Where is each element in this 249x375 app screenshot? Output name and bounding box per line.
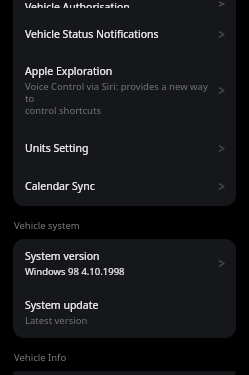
button[interactable]: Units Setting <box>13 129 236 167</box>
staticText: System update <box>25 298 99 312</box>
staticText: System version <box>25 249 100 263</box>
staticText: Windows 98 4.10.1998 <box>25 265 125 278</box>
staticText: Apple Exploration <box>25 64 113 78</box>
staticText: Calendar Sync <box>25 179 95 193</box>
button[interactable]: Vehicle Status Notifications <box>13 15 236 53</box>
staticText: Voice Control via Siri: provides a new w… <box>25 80 213 117</box>
staticText: Vehicle system <box>14 219 80 232</box>
button[interactable]: System update <box>13 289 236 338</box>
staticText: Vehicle Authorisation <box>25 0 130 8</box>
staticText: Latest version <box>25 314 88 327</box>
staticText: Vehicle Info <box>14 351 67 364</box>
button[interactable]: Calendar Sync <box>13 167 236 206</box>
button[interactable]: Apple Exploration <box>13 53 236 129</box>
button[interactable]: System version <box>13 239 236 289</box>
staticText: Vehicle Status Notifications <box>25 27 159 41</box>
staticText: Units Setting <box>25 141 89 155</box>
button[interactable]: Vehicle Authorisation <box>13 0 236 15</box>
